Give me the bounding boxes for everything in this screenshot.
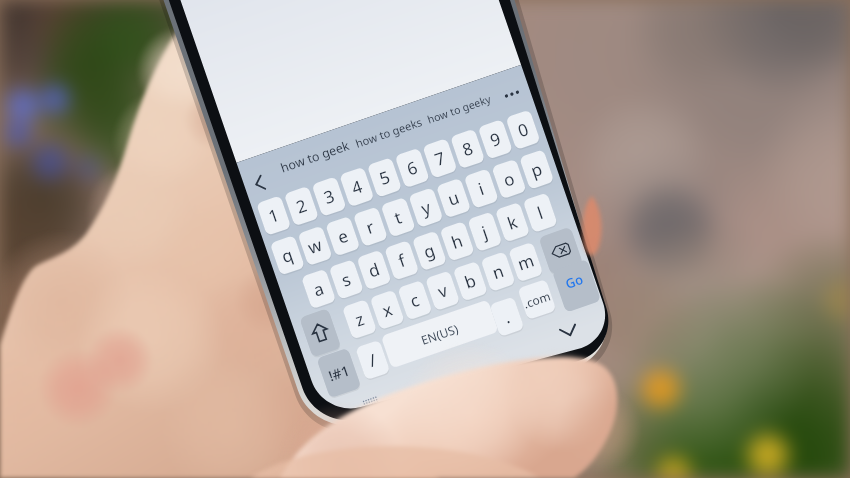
button[interactable]: Hand holding a phone with on-screen keyb… bbox=[0, 0, 850, 478]
